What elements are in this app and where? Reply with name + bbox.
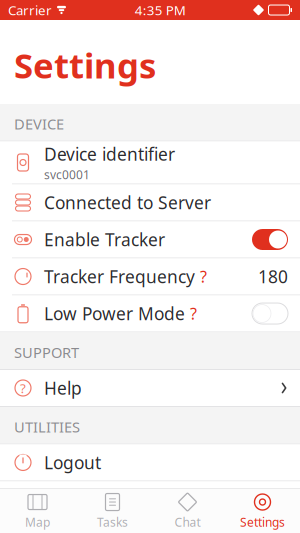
- button[interactable]: Enable Tracker: [0, 221, 300, 257]
- staticText: 4:35 PM: [135, 1, 186, 19]
- staticText: ?: [190, 303, 197, 324]
- staticText: ?: [200, 266, 207, 287]
- staticText: Chat: [174, 514, 200, 530]
- staticText: Help: [44, 376, 82, 399]
- staticText: Tasks: [97, 514, 128, 530]
- staticText: Carrier: [8, 1, 52, 19]
- button[interactable]: Low Power Mode: [0, 295, 300, 331]
- staticText: svc0001: [44, 167, 90, 182]
- staticText: Connected to Server: [44, 191, 211, 214]
- button[interactable]: Tasks: [75, 487, 150, 533]
- button[interactable]: Connected to Server: [0, 184, 300, 220]
- staticText: UTILITIES: [14, 417, 80, 436]
- button[interactable]: Map: [0, 487, 75, 533]
- staticText: Logout: [44, 451, 101, 474]
- staticText: Settings: [14, 42, 156, 88]
- button[interactable]: Chat: [150, 487, 225, 533]
- button[interactable]: Tracker Frequency: [0, 258, 300, 294]
- staticText: Low Power Mode: [44, 302, 185, 325]
- button[interactable]: Logout: [0, 444, 300, 480]
- button[interactable]: ?: [0, 370, 300, 406]
- staticText: Enable Tracker: [44, 228, 165, 251]
- button[interactable]: Settings: [225, 487, 300, 533]
- staticText: DEVICE: [14, 114, 64, 133]
- staticText: Settings: [240, 514, 285, 530]
- staticText: SUPPORT: [14, 342, 79, 362]
- staticText: Device identifier: [44, 142, 175, 165]
- staticText: Tracker Frequency: [44, 265, 195, 288]
- staticText: 180: [258, 265, 288, 288]
- button[interactable]: Device identifier: [0, 141, 300, 183]
- staticText: ?: [20, 379, 26, 397]
- staticText: Map: [25, 514, 50, 530]
